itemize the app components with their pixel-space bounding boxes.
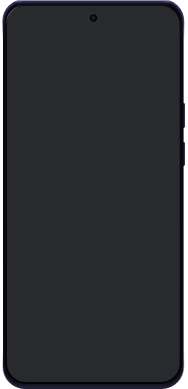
button[interactable]: Phone device — [0, 0, 188, 389]
